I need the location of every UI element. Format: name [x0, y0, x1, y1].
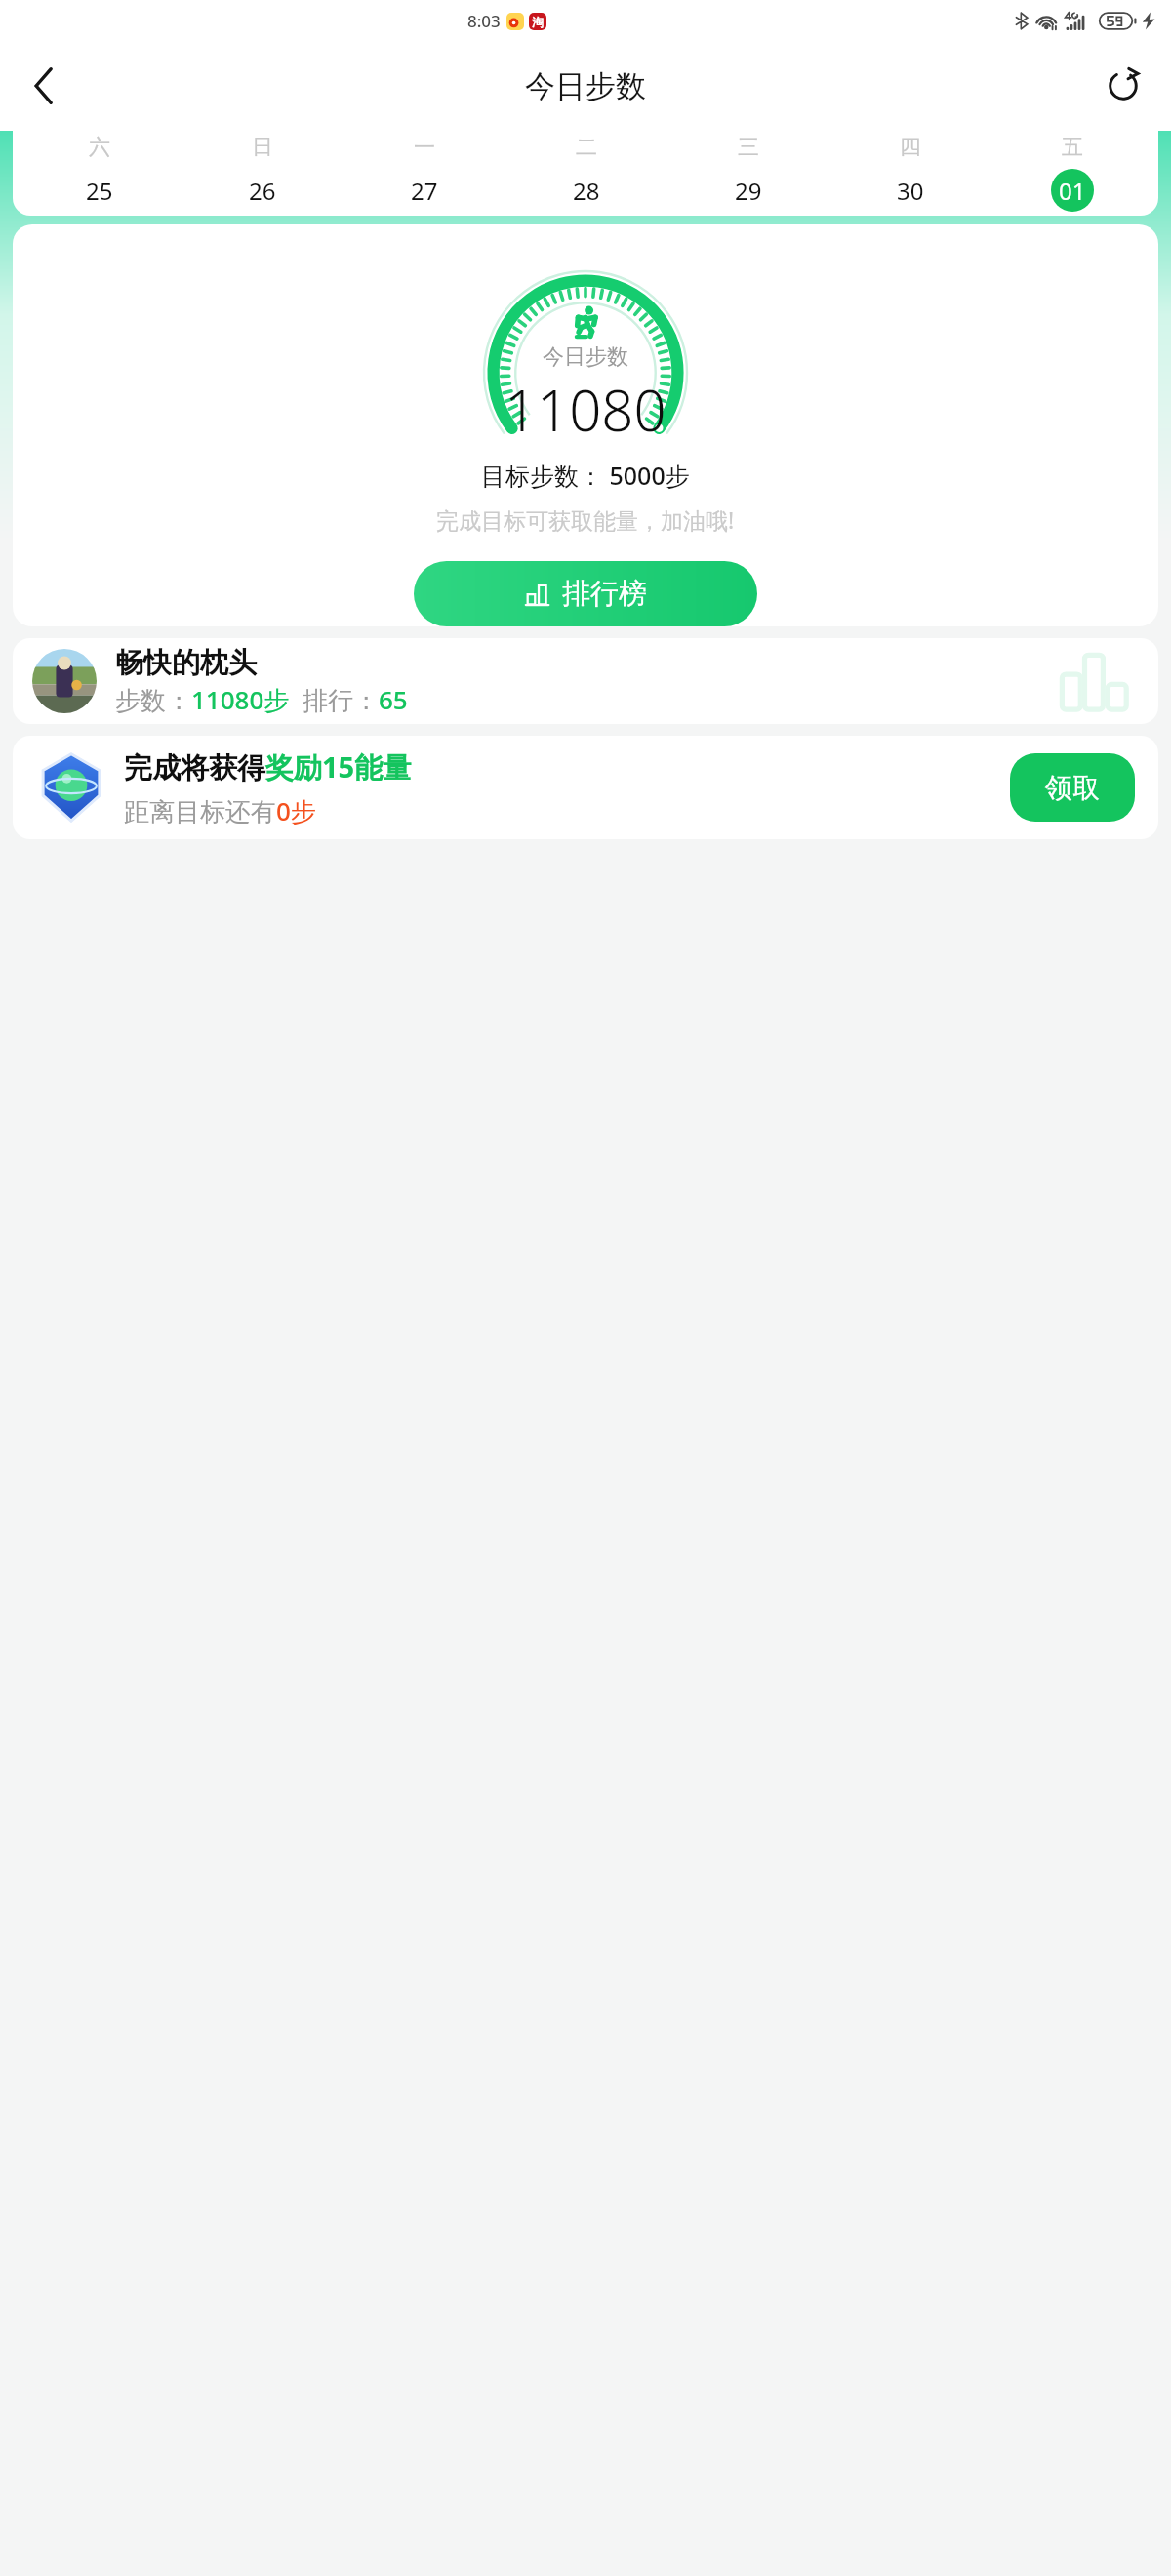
staticText: 25 [86, 175, 113, 207]
staticText: 完成目标可获取能量，加油哦! [436, 504, 735, 535]
staticText: 排行榜 [562, 576, 647, 612]
button[interactable]: 01 [1051, 169, 1094, 212]
staticText: 8:03 [467, 10, 501, 32]
staticText: 日 [252, 134, 273, 161]
staticText: 27 [411, 175, 438, 207]
button[interactable]: 领取 [1010, 753, 1135, 822]
staticText: 步数：11080步 排行：65 [115, 682, 408, 717]
staticText: 28 [573, 175, 600, 207]
staticText: 四 [900, 134, 921, 161]
staticText: 距离目标还有0步 [124, 793, 316, 828]
staticText: 今日步数 [525, 67, 646, 105]
staticText: 26 [249, 175, 276, 207]
staticText: 三 [738, 134, 759, 161]
staticText: 畅快的枕头 [115, 645, 257, 681]
button[interactable]: 30 [889, 169, 932, 212]
staticText: 二 [576, 134, 597, 161]
staticText: 五 [1062, 134, 1083, 161]
button[interactable]: 28 [565, 169, 608, 212]
staticText: 完成将获得奖励15能量 [124, 747, 412, 786]
button[interactable]: 25 [78, 169, 121, 212]
staticText: 领取 [1045, 771, 1100, 805]
button[interactable]: 26 [241, 169, 284, 212]
button[interactable]: 排行榜 [414, 561, 757, 626]
staticText: 今日步数 [543, 343, 628, 371]
button[interactable]: 29 [727, 169, 770, 212]
staticText: 30 [897, 175, 924, 207]
staticText: 目标步数： 5000步 [481, 459, 690, 492]
button[interactable]: Refresh [1095, 58, 1151, 114]
staticText: 29 [735, 175, 762, 207]
staticText: 11080 [505, 371, 666, 448]
staticText: 六 [89, 134, 110, 161]
staticText: 一 [414, 134, 435, 161]
button[interactable]: 畅快的枕头 [13, 638, 1158, 724]
button[interactable]: 27 [403, 169, 446, 212]
staticText: 01 [1059, 175, 1086, 207]
staticText: 淘 [532, 15, 544, 29]
button[interactable]: Back [16, 58, 72, 114]
